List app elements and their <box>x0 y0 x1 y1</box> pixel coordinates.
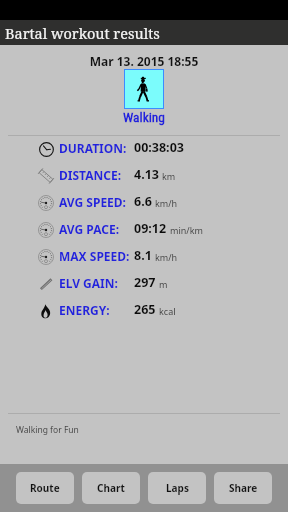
button[interactable]: AVG SPEED: <box>0 188 288 215</box>
button[interactable]: Route <box>16 472 74 504</box>
staticText: Laps <box>166 481 189 495</box>
staticText: Walking <box>0 109 288 125</box>
staticText: Share <box>229 481 258 495</box>
staticText: 00:38:03 <box>134 139 184 156</box>
button[interactable]: AVG PACE: <box>0 215 288 242</box>
button[interactable]: ELV GAIN: <box>0 269 288 296</box>
button[interactable]: Chart <box>82 472 140 504</box>
staticText: 09:12 <box>134 220 167 237</box>
button[interactable]: Share <box>214 472 272 504</box>
staticText: AVG PACE: <box>59 221 120 237</box>
staticText: AVG SPEED: <box>59 194 126 210</box>
staticText: 6.6 <box>134 193 152 210</box>
staticText: ENERGY: <box>59 302 110 318</box>
button[interactable]: ENERGY: <box>0 296 288 323</box>
staticText: 297 <box>134 274 156 291</box>
staticText: DURATION: <box>59 140 127 156</box>
staticText: m <box>159 278 168 290</box>
button[interactable]: DURATION: <box>0 134 288 161</box>
staticText: 8.1 <box>134 247 152 264</box>
button[interactable]: Laps <box>148 472 206 504</box>
staticText: km/h <box>155 197 178 209</box>
staticText: MAX SPEED: <box>59 248 130 264</box>
staticText: Chart <box>97 481 125 495</box>
staticText: Route <box>30 481 60 495</box>
button[interactable]: DISTANCE: <box>0 161 288 188</box>
staticText: DISTANCE: <box>59 167 122 183</box>
staticText: kcal <box>159 305 176 317</box>
button[interactable] <box>124 69 164 109</box>
staticText: km/h <box>155 251 178 263</box>
staticText: km <box>162 170 176 182</box>
staticText: Walking for Fun <box>16 424 79 436</box>
staticText: Mar 13. 2015 18:55 <box>0 53 288 69</box>
staticText: 265 <box>134 301 156 318</box>
button[interactable]: MAX SPEED: <box>0 242 288 269</box>
staticText: 4.13 <box>134 166 159 183</box>
staticText: Bartal workout results <box>5 23 160 43</box>
staticText: min/km <box>170 224 203 236</box>
staticText: ELV GAIN: <box>59 275 118 291</box>
